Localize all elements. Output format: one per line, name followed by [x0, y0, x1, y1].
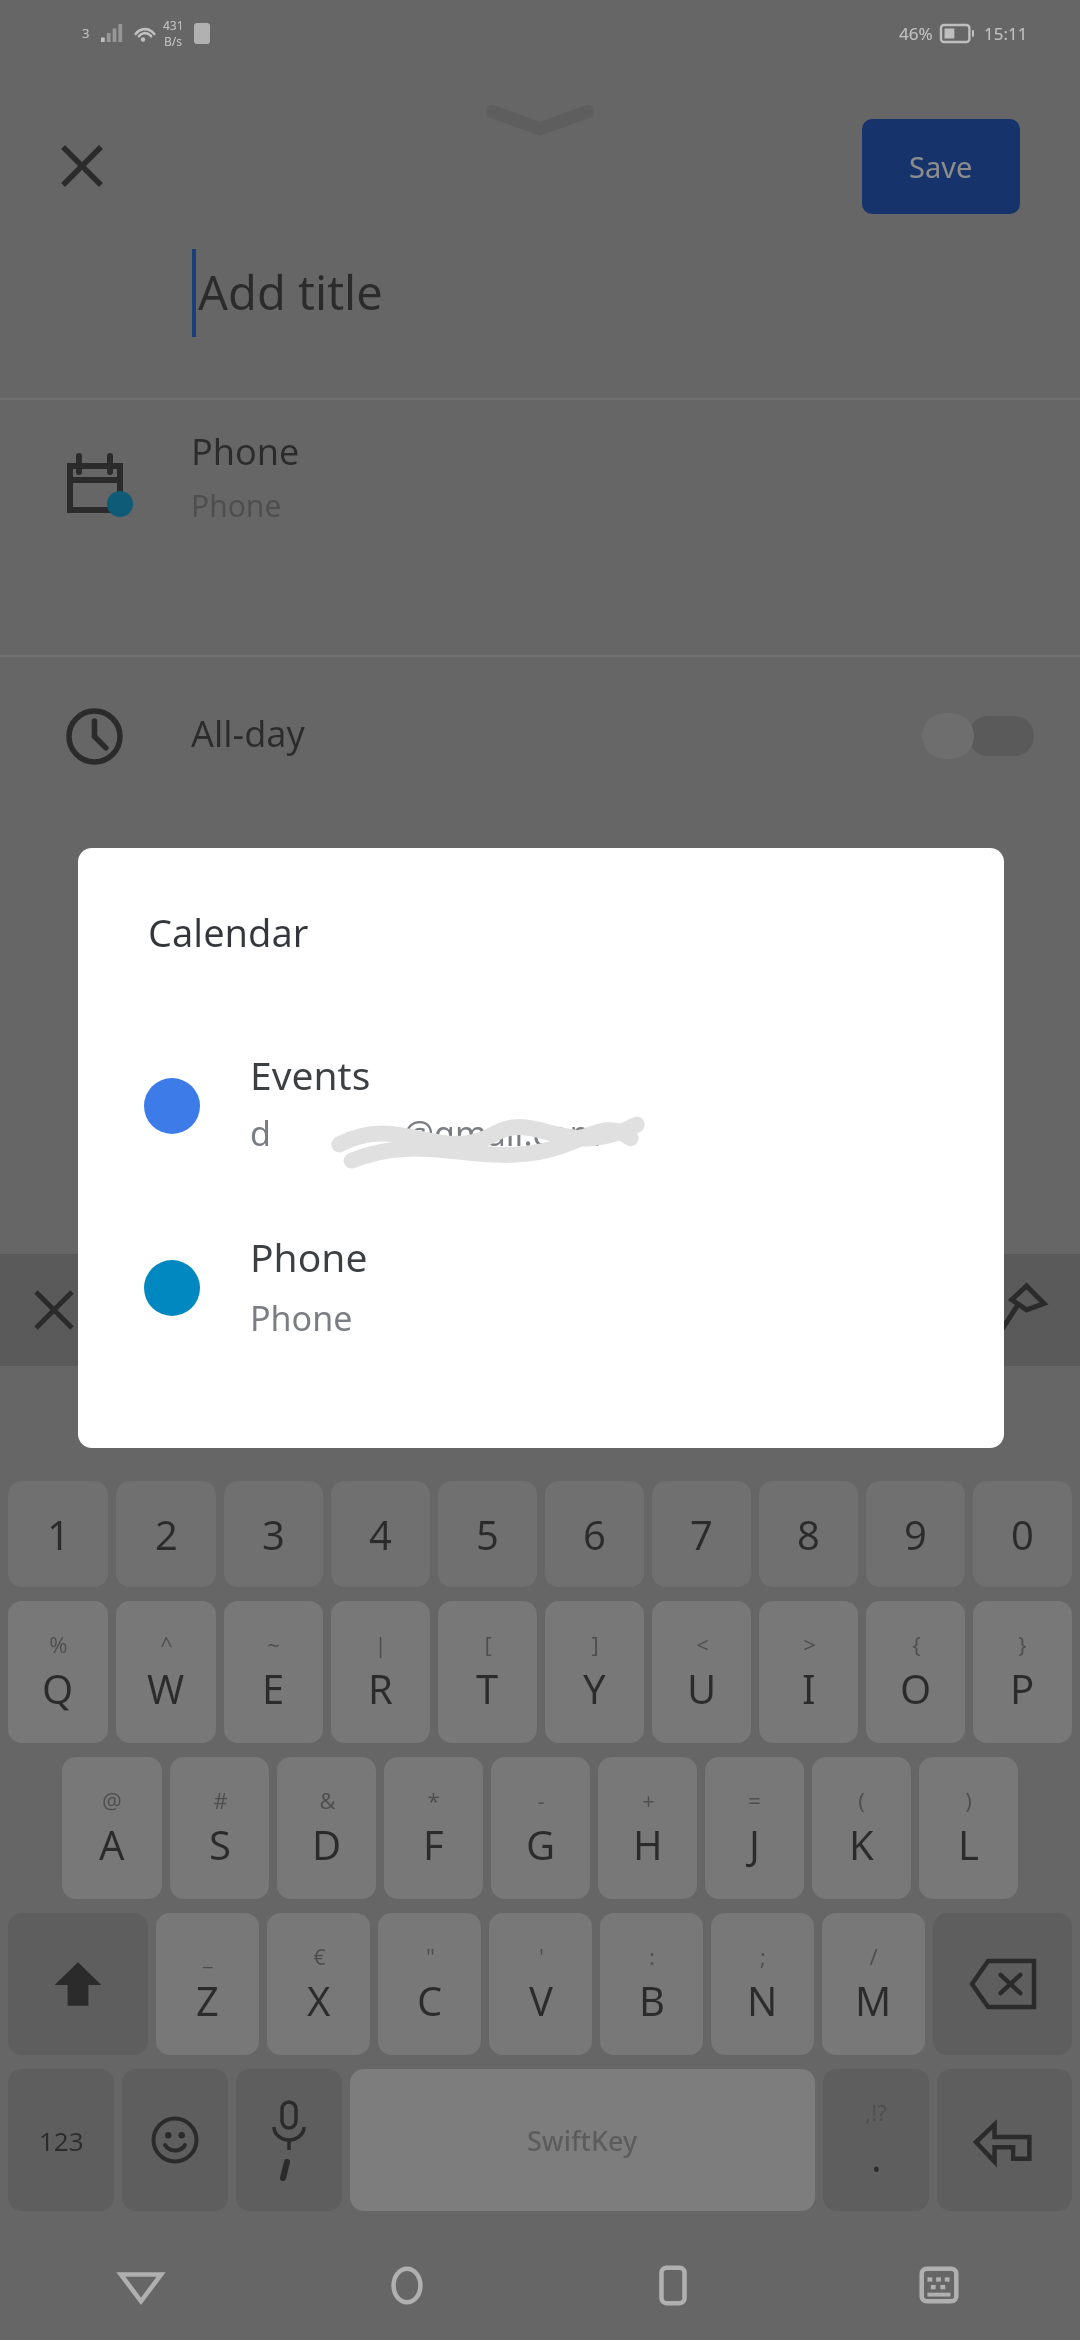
button[interactable]: ^ [116, 1601, 216, 1743]
button[interactable]: SwiftKey [350, 2069, 815, 2211]
button[interactable]: 0 [973, 1481, 1072, 1587]
button[interactable]: - [491, 1757, 590, 1899]
staticText: = [748, 1785, 761, 1815]
staticText: P [1010, 1661, 1035, 1715]
button[interactable] [122, 2069, 228, 2211]
button[interactable]: } [973, 1601, 1072, 1743]
button[interactable]: Phone [0, 398, 1080, 545]
staticText: / [869, 1941, 878, 1971]
button[interactable]: ] [545, 1601, 644, 1743]
staticText: K [849, 1817, 874, 1871]
staticText: ] [591, 1629, 599, 1659]
button[interactable]: | [331, 1601, 430, 1743]
button[interactable]: 6 [545, 1481, 644, 1587]
staticText: 7 [690, 1507, 713, 1561]
button[interactable]: All-day [0, 656, 1080, 816]
button[interactable]: Close [46, 130, 118, 202]
button[interactable] [933, 1913, 1072, 2055]
staticText: A [99, 1817, 125, 1871]
staticText: L [958, 1817, 979, 1871]
button[interactable]: Recents [625, 2237, 721, 2333]
button[interactable] [937, 2069, 1072, 2211]
staticText: M [855, 1973, 892, 2027]
button[interactable]: : [600, 1913, 703, 2055]
button[interactable]: [ [438, 1601, 537, 1743]
staticText: 2 [155, 1507, 178, 1561]
button[interactable]: _ [156, 1913, 259, 2055]
button[interactable]: ( [812, 1757, 911, 1899]
button[interactable]: = [705, 1757, 804, 1899]
button[interactable]: # [170, 1757, 269, 1899]
button[interactable]: 4 [331, 1481, 430, 1587]
staticText: Phone [250, 1230, 368, 1283]
button[interactable]: > [759, 1601, 858, 1743]
staticText: ^ [160, 1629, 173, 1659]
button[interactable]: + [598, 1757, 697, 1899]
button[interactable]: % [8, 1601, 108, 1743]
button[interactable]: * [384, 1757, 483, 1899]
staticText: B/s [164, 33, 183, 49]
button[interactable]: Hide keyboard [891, 2237, 987, 2333]
staticText: * [427, 1785, 440, 1815]
button[interactable]: 123 [8, 2069, 114, 2211]
button[interactable]: Events [78, 1038, 1004, 1198]
staticText: G [526, 1817, 556, 1871]
staticText: V [529, 1973, 553, 2027]
staticText: I [802, 1661, 816, 1715]
staticText: All-day [191, 709, 305, 758]
staticText: 5 [476, 1507, 499, 1561]
button[interactable]: Collapse [480, 100, 600, 136]
button[interactable]: & [277, 1757, 376, 1899]
staticText: F [423, 1817, 444, 1871]
button[interactable]: Home [359, 2237, 455, 2333]
button[interactable]: 2 [116, 1481, 216, 1587]
button[interactable] [236, 2069, 342, 2211]
button[interactable]: ) [919, 1757, 1018, 1899]
button[interactable]: 3 [224, 1481, 323, 1587]
staticText: 1 [47, 1507, 70, 1561]
staticText: [ [484, 1629, 492, 1659]
staticText: | [374, 1629, 387, 1659]
staticText: { [912, 1629, 921, 1659]
staticText: ( [858, 1785, 865, 1815]
staticText: J [749, 1817, 760, 1871]
staticText: 46% [899, 22, 933, 45]
button[interactable]: " [378, 1913, 481, 2055]
staticText: Q [42, 1661, 74, 1715]
staticText: € [313, 1941, 326, 1971]
button[interactable]: { [866, 1601, 965, 1743]
button[interactable]: Save [862, 119, 1020, 214]
button[interactable]: € [267, 1913, 370, 2055]
staticText: @ [102, 1785, 122, 1815]
button[interactable]: ' [489, 1913, 592, 2055]
staticText: ' [539, 1941, 544, 1971]
staticText: - [537, 1785, 545, 1815]
staticText: Phone [250, 1295, 353, 1341]
staticText: C [417, 1973, 443, 2027]
button[interactable]: 5 [438, 1481, 537, 1587]
button[interactable]: Phone [78, 1220, 1004, 1380]
button[interactable] [8, 1913, 148, 2055]
other: Pin [998, 1286, 1044, 1332]
staticText: 431 [163, 17, 184, 33]
staticText: ; [760, 1941, 766, 1971]
button[interactable]: ~ [224, 1601, 323, 1743]
staticText: W [147, 1661, 185, 1715]
staticText: _ [203, 1941, 213, 1971]
button[interactable]: ; [711, 1913, 814, 2055]
button[interactable]: @ [62, 1757, 162, 1899]
button[interactable]: 9 [866, 1481, 965, 1587]
staticText: T [476, 1661, 499, 1715]
staticText: ) [965, 1785, 972, 1815]
staticText: 123 [39, 2123, 84, 2158]
staticText: ~ [267, 1629, 280, 1659]
button[interactable]: < [652, 1601, 751, 1743]
button[interactable]: 7 [652, 1481, 751, 1587]
staticText: . [871, 2129, 882, 2183]
button[interactable]: 8 [759, 1481, 858, 1587]
button[interactable]: 1 [8, 1481, 108, 1587]
staticText: 3 [82, 24, 90, 42]
button[interactable]: Back [93, 2237, 189, 2333]
button[interactable]: / [822, 1913, 925, 2055]
